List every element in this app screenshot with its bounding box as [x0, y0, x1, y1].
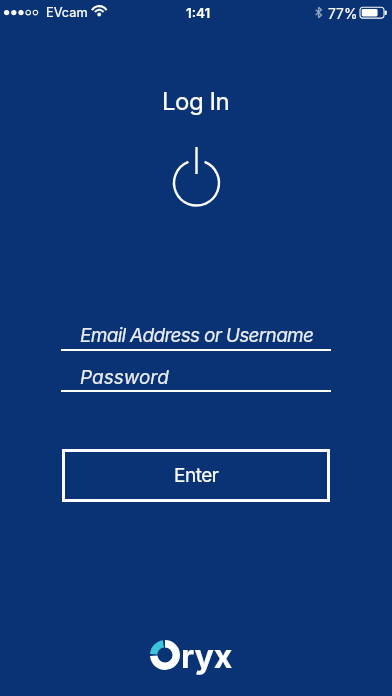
staticText: Password — [80, 366, 169, 389]
staticText: ryx — [181, 637, 233, 676]
staticText: Log In — [162, 87, 230, 116]
staticText: Email Address or Username — [80, 324, 314, 347]
staticText: EVcam — [46, 5, 88, 20]
staticText: 1:41 — [186, 5, 211, 21]
staticText: Enter — [174, 464, 219, 487]
button[interactable]: Password — [61, 360, 331, 392]
button[interactable]: Enter — [62, 449, 330, 502]
button[interactable]: Email Address or Username — [61, 318, 331, 351]
staticText: 77% — [328, 6, 358, 23]
